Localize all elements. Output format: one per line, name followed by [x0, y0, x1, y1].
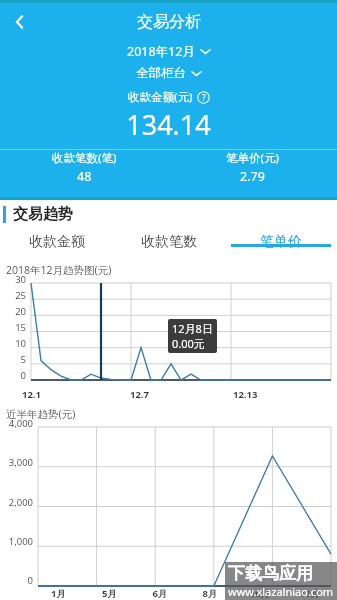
button[interactable]: 笔单价(元): [168, 150, 337, 185]
staticText: 11月: [285, 587, 335, 600]
staticText: 0: [0, 369, 26, 382]
staticText: 15: [0, 321, 26, 334]
staticText: 2,000: [0, 496, 33, 509]
staticText: 笔单价(元): [226, 150, 279, 166]
button[interactable]: 收款笔数(笔): [0, 150, 168, 185]
button[interactable]: Help: [197, 91, 210, 104]
button[interactable]: 笔单价: [225, 228, 337, 251]
staticText: 3,000: [0, 456, 33, 469]
staticText: 8月: [185, 587, 235, 600]
button[interactable]: 收款金额: [0, 228, 113, 251]
button[interactable]: 2018年12月: [0, 40, 337, 62]
button[interactable]: 全部柜台: [0, 62, 337, 84]
staticText: 1月: [33, 587, 84, 600]
staticText: 全部柜台: [136, 65, 186, 81]
staticText: 134.14: [0, 106, 337, 143]
staticText: www.xlazalniao.com: [228, 584, 334, 599]
staticText: 笔单价: [260, 233, 302, 251]
button[interactable]: 收款笔数: [113, 228, 225, 251]
staticText: 12.1: [22, 388, 41, 401]
staticText: 0.00元: [172, 336, 205, 351]
staticText: 收款金额(元): [128, 89, 193, 105]
button[interactable]: Back: [0, 3, 40, 40]
staticText: 下载鸟应用: [228, 563, 313, 584]
staticText: 5: [0, 353, 26, 366]
staticText: 收款笔数: [141, 233, 197, 251]
staticText: 12.7: [130, 388, 149, 401]
staticText: 12.13: [233, 388, 258, 401]
staticText: 交易趋势: [13, 205, 73, 224]
staticText: 0: [0, 574, 33, 587]
staticText: 12月8日: [172, 321, 213, 336]
staticText: 1,000: [0, 535, 33, 548]
staticText: 2.79: [240, 168, 265, 185]
staticText: 收款笔数(笔): [52, 150, 117, 166]
staticText: 48: [77, 168, 92, 185]
staticText: 20: [0, 305, 26, 318]
staticText: 2018年12月趋势图(元): [6, 263, 112, 277]
staticText: 30: [0, 273, 26, 286]
staticText: 10月: [235, 587, 285, 600]
staticText: 收款金额: [29, 233, 85, 251]
staticText: 4,000: [0, 417, 33, 430]
staticText: 5月: [84, 587, 135, 600]
staticText: 25: [0, 289, 26, 302]
staticText: ?: [202, 92, 206, 103]
staticText: 6月: [135, 587, 185, 600]
staticText: 交易分析: [137, 12, 201, 32]
staticText: 2018年12月: [127, 43, 195, 60]
staticText: 10: [0, 337, 26, 350]
staticText: 近半年趋势(元): [6, 407, 76, 421]
